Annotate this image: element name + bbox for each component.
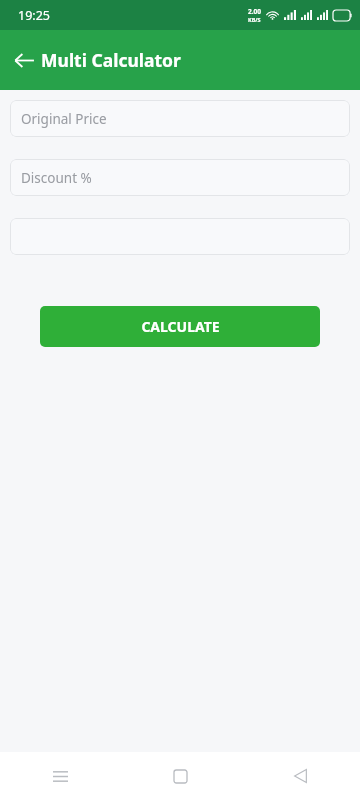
button[interactable]: Home: [120, 752, 240, 800]
staticText: 2.00: [248, 7, 261, 16]
staticText: KB/S: [248, 16, 261, 23]
staticText: 19:25: [18, 7, 50, 24]
staticText: Multi Calculator: [41, 48, 181, 72]
button[interactable]: Original Price: [10, 100, 350, 137]
button[interactable]: Discount %: [10, 159, 350, 196]
button[interactable]: [10, 218, 350, 255]
staticText: Original Price: [21, 110, 107, 128]
button[interactable]: Back: [240, 752, 360, 800]
button[interactable]: CALCULATE: [40, 306, 320, 347]
button[interactable]: Back: [6, 42, 42, 78]
staticText: CALCULATE: [141, 317, 220, 336]
staticText: Discount %: [21, 169, 92, 187]
button[interactable]: Recent apps: [0, 752, 120, 800]
